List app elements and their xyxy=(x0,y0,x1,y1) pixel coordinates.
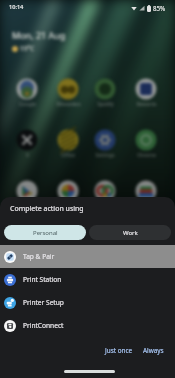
button[interactable]: Tap & Pair xyxy=(0,245,175,268)
staticText: Rewards xyxy=(136,101,157,108)
staticText: Printer Setup xyxy=(23,298,64,307)
staticText: Spotify xyxy=(97,101,114,108)
staticText: Settings xyxy=(95,152,115,159)
staticText: Print Station xyxy=(23,275,62,284)
button[interactable]: PrintConnect xyxy=(0,314,175,337)
staticText: Personal xyxy=(33,229,58,237)
button[interactable]: Just once xyxy=(100,342,138,359)
button[interactable]: Always xyxy=(138,342,169,359)
staticText: Office xyxy=(61,152,75,159)
button[interactable]: Printer Setup xyxy=(0,291,175,314)
staticText: X xyxy=(26,152,29,159)
staticText: 10:14 xyxy=(9,3,24,11)
staticText: Chrome xyxy=(137,152,156,159)
staticText: Work xyxy=(123,229,138,237)
staticText: Bitwarden xyxy=(56,101,81,108)
staticText: PrintConnect xyxy=(23,321,64,330)
staticText: 85% xyxy=(153,4,166,12)
button[interactable]: Print Station xyxy=(0,268,175,291)
staticText: 19°C xyxy=(20,44,35,53)
staticText: Tap & Pair xyxy=(23,252,55,261)
staticText: Always xyxy=(143,346,164,355)
staticText: Mon, 21 Aug xyxy=(12,29,66,41)
staticText: Google xyxy=(19,101,36,108)
button[interactable]: Personal xyxy=(4,225,86,240)
staticText: Just once xyxy=(105,346,133,355)
button[interactable]: Work xyxy=(89,225,171,240)
staticText: Complete action using xyxy=(10,204,84,214)
